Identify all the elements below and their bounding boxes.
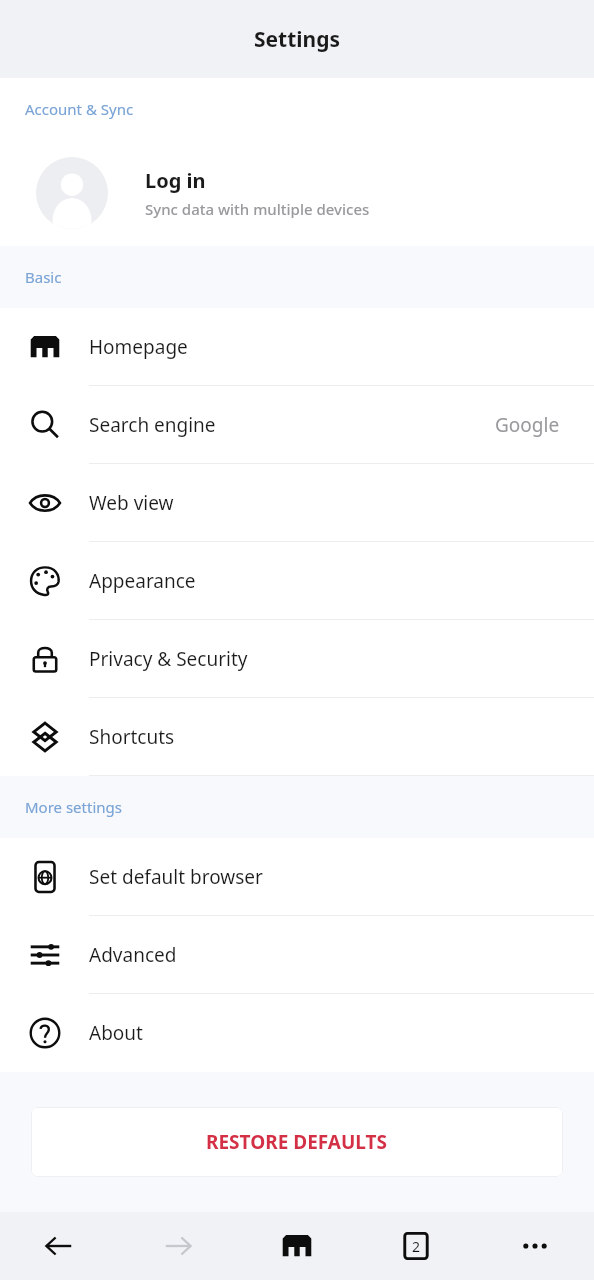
button[interactable]: About xyxy=(0,994,594,1072)
button[interactable]: Search engine xyxy=(0,386,594,464)
button[interactable]: Home xyxy=(237,1212,356,1280)
button[interactable]: More options xyxy=(475,1212,594,1280)
button[interactable]: Forward xyxy=(118,1212,237,1280)
button[interactable]: Set default browser xyxy=(0,838,594,916)
staticText: Google xyxy=(495,412,560,438)
staticText: Basic xyxy=(25,267,62,287)
staticText: Privacy & Security xyxy=(89,646,248,672)
staticText: Settings xyxy=(254,25,341,54)
staticText: RESTORE DEFAULTS xyxy=(206,1129,388,1155)
staticText: Log in xyxy=(145,167,206,194)
staticText: Sync data with multiple devices xyxy=(145,199,370,219)
staticText: Advanced xyxy=(89,942,177,968)
staticText: More settings xyxy=(25,797,122,817)
button[interactable]: Appearance xyxy=(0,542,594,620)
staticText: Shortcuts xyxy=(89,724,175,750)
staticText: Account & Sync xyxy=(25,99,134,119)
staticText: Appearance xyxy=(89,568,196,594)
staticText: Search engine xyxy=(89,412,216,438)
button[interactable]: Log in xyxy=(0,140,594,246)
button[interactable]: Tabs, 2 open xyxy=(356,1212,475,1280)
staticText: 2 xyxy=(412,1237,421,1256)
button[interactable]: Homepage xyxy=(0,308,594,386)
staticText: Homepage xyxy=(89,334,188,360)
button[interactable]: Privacy & Security xyxy=(0,620,594,698)
button[interactable]: RESTORE DEFAULTS xyxy=(31,1107,563,1177)
button[interactable]: Advanced xyxy=(0,916,594,994)
button[interactable]: Web view xyxy=(0,464,594,542)
staticText: Web view xyxy=(89,490,174,516)
button[interactable]: Back xyxy=(0,1212,118,1280)
staticText: Set default browser xyxy=(89,864,263,890)
staticText: About xyxy=(89,1020,143,1046)
button[interactable]: Shortcuts xyxy=(0,698,594,776)
